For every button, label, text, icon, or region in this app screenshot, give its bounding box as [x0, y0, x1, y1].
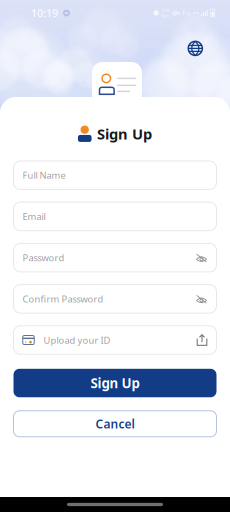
staticText: Cancel [95, 416, 134, 432]
staticText: KB/s [161, 13, 169, 18]
staticText: 3.99 [162, 7, 169, 13]
button[interactable]: Language [182, 36, 208, 61]
staticText: Sign Up [90, 374, 139, 392]
staticText: Full Name [22, 169, 65, 181]
button[interactable]: Sign Up [13, 369, 216, 397]
staticText: Confirm Password [22, 293, 103, 305]
staticText: Email [22, 210, 45, 223]
button[interactable]: Cancel [13, 411, 216, 437]
staticText: Password [22, 251, 64, 264]
staticText: Sign Up [97, 124, 152, 143]
staticText: 10:19 [31, 6, 58, 20]
staticText: Ꮀıı [183, 9, 191, 17]
staticText: Upload your ID [43, 334, 110, 346]
